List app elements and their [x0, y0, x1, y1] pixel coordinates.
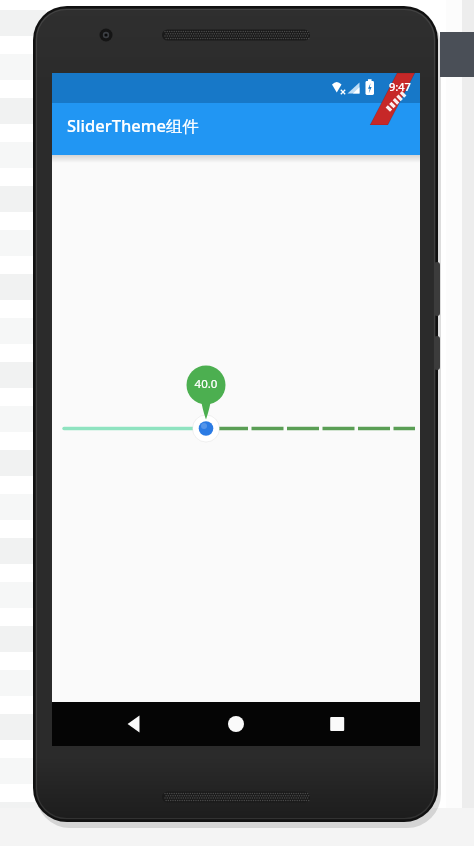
button[interactable]: Home: [210, 702, 262, 746]
button[interactable]: Recent apps: [310, 702, 362, 746]
staticText: 40.0: [188, 376, 224, 394]
button[interactable]: Slider, value 40.0: [64, 410, 416, 446]
staticText: SliderTheme组件: [67, 114, 199, 137]
staticText: 9:47: [389, 79, 411, 94]
button[interactable]: Back: [110, 702, 162, 746]
